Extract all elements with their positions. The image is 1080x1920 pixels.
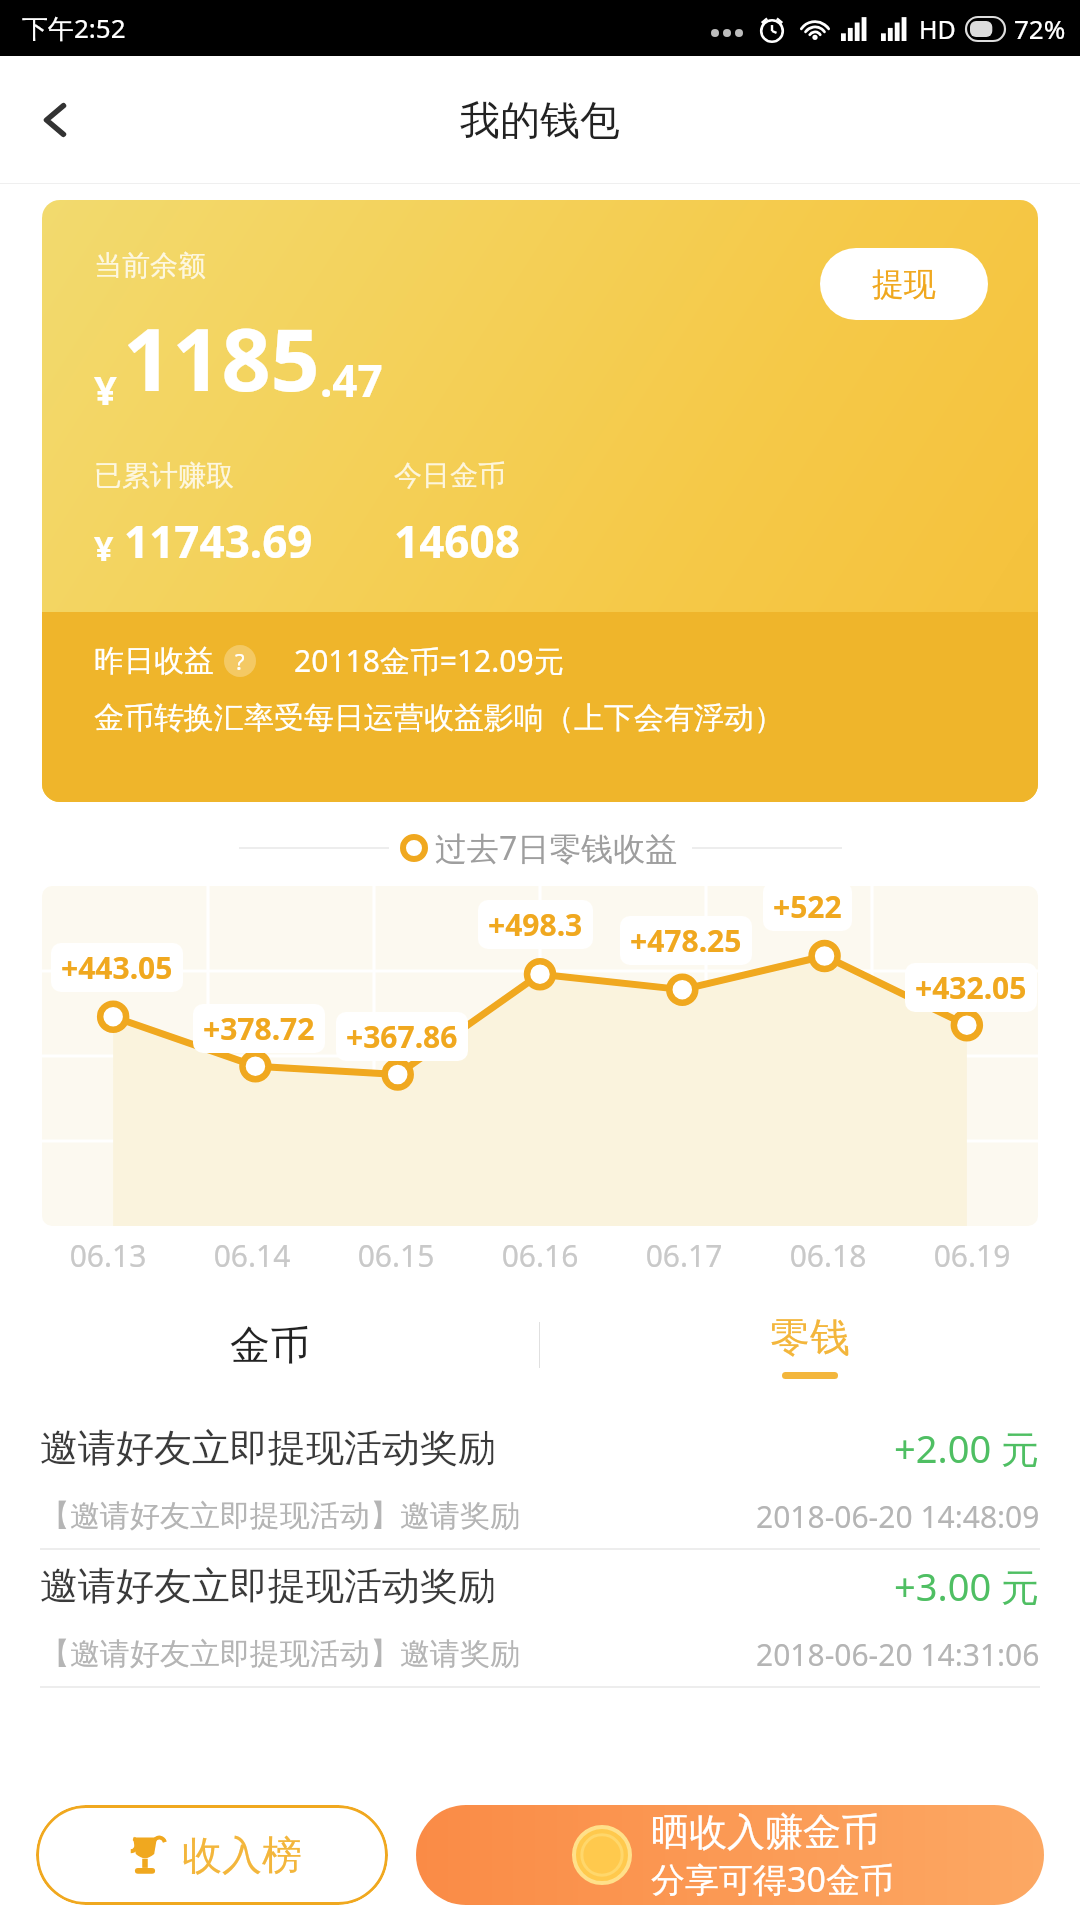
staticText: 我的钱包	[460, 95, 620, 145]
staticText: 下午2:52	[22, 10, 126, 46]
staticText: +2.00 元	[894, 1422, 1040, 1474]
staticText: 金币转换汇率受每日运营收益影响（上下会有浮动）	[94, 699, 784, 737]
staticText: 2018-06-20 14:31:06	[756, 1634, 1040, 1675]
button[interactable]: 当前余额	[42, 200, 1038, 802]
staticText: .47	[320, 350, 383, 410]
staticText: 【邀请好友立即提现活动】邀请奖励	[40, 1635, 756, 1673]
staticText: +432.05	[915, 967, 1027, 1008]
staticText: 晒收入赚金币	[651, 1808, 879, 1856]
staticText: ¥	[94, 362, 117, 416]
button[interactable]: Back	[18, 82, 94, 158]
button[interactable]: 金币	[0, 1290, 539, 1400]
staticText: 06.16	[468, 1235, 612, 1276]
staticText: 14608	[394, 511, 520, 571]
staticText: 分享可得30金币	[651, 1856, 894, 1902]
staticText: 06.13	[36, 1235, 180, 1276]
staticText: 06.19	[900, 1235, 1044, 1276]
staticText: 当前余额	[94, 248, 206, 283]
staticText: 06.17	[612, 1235, 756, 1276]
staticText: 邀请好友立即提现活动奖励	[40, 1562, 894, 1610]
staticText: 72%	[1014, 11, 1066, 46]
staticText: 2018-06-20 14:48:09	[756, 1496, 1040, 1537]
staticText: 零钱	[770, 1312, 850, 1362]
staticText: +478.25	[630, 920, 742, 961]
staticText: +367.86	[346, 1016, 458, 1057]
staticText: 提现	[872, 264, 936, 304]
staticText: 11743.69	[124, 511, 313, 571]
staticText: 【邀请好友立即提现活动】邀请奖励	[40, 1497, 756, 1535]
staticText: 过去7日零钱收益	[435, 826, 678, 870]
button[interactable]: 邀请好友立即提现活动奖励	[0, 1412, 1080, 1550]
staticText: +522	[773, 886, 842, 927]
staticText: +378.72	[203, 1008, 315, 1049]
button[interactable]: 邀请好友立即提现活动奖励	[0, 1550, 1080, 1688]
staticText: ¥	[94, 525, 114, 571]
staticText: 今日金币	[394, 458, 506, 493]
staticText: 20118金币=12.09元	[294, 640, 564, 681]
staticText: 金币	[230, 1320, 310, 1370]
button[interactable]: 提现	[820, 248, 988, 320]
staticText: +3.00 元	[894, 1560, 1040, 1612]
staticText: +443.05	[61, 947, 173, 988]
staticText: 06.14	[180, 1235, 324, 1276]
staticText: 已累计赚取	[94, 458, 234, 493]
staticText: +498.3	[488, 904, 583, 945]
button[interactable]: Help	[224, 645, 256, 677]
staticText: 收入榜	[182, 1830, 302, 1880]
button[interactable]: 晒收入赚金币	[416, 1805, 1044, 1905]
staticText: 1185	[123, 299, 320, 416]
button[interactable]: 收入榜	[36, 1805, 388, 1905]
staticText: 昨日收益	[94, 642, 214, 680]
staticText: 06.18	[756, 1235, 900, 1276]
staticText: 邀请好友立即提现活动奖励	[40, 1424, 894, 1472]
staticText: ?	[235, 646, 245, 676]
button[interactable]: 零钱	[540, 1290, 1080, 1400]
staticText: HD	[919, 12, 956, 46]
staticText: 06.15	[324, 1235, 468, 1276]
